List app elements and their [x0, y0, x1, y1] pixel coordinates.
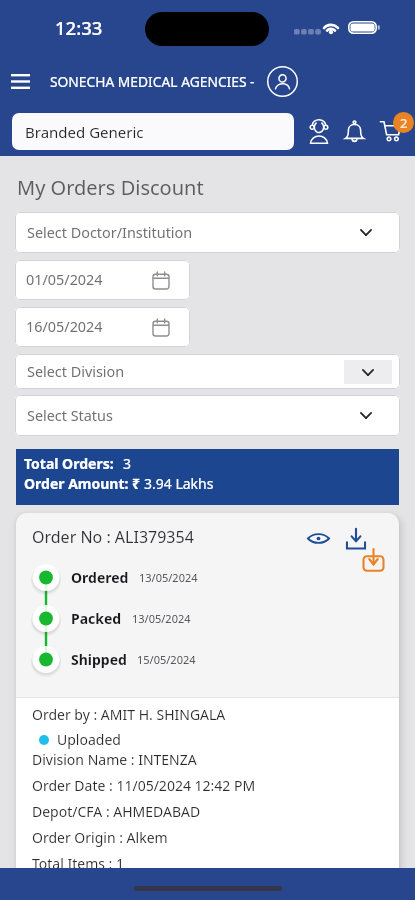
staticText: Branded Generic — [25, 122, 144, 142]
staticText: Packed — [71, 609, 122, 628]
staticText: Ordered — [71, 568, 129, 587]
staticText: Select Division — [27, 362, 125, 382]
button[interactable]: 16/05/2024 — [15, 307, 190, 347]
staticText: Order Date : 11/05/2024 12:42 PM — [32, 776, 256, 795]
staticText: Shipped — [71, 650, 127, 669]
staticText: Order Origin : Alkem — [32, 828, 168, 847]
staticText: 15/05/2024 — [137, 652, 196, 667]
button[interactable]: Download invoice — [359, 546, 387, 574]
button[interactable]: Cart — [375, 116, 405, 146]
staticText: Total Items : 1 — [32, 854, 124, 873]
button[interactable]: Select Status — [15, 395, 400, 436]
staticText: 16/05/2024 — [26, 317, 103, 337]
button[interactable]: View order — [303, 523, 333, 553]
staticText: Total Orders: — [24, 454, 114, 473]
staticText: 2 — [400, 114, 408, 132]
staticText: 13/05/2024 — [139, 570, 198, 585]
staticText: Order by : AMIT H. SHINGALA — [32, 705, 226, 724]
staticText: Select Doctor/Institution — [27, 223, 193, 243]
staticText: Select Status — [27, 406, 113, 426]
button[interactable]: 01/05/2024 — [15, 260, 190, 300]
button[interactable]: Menu — [2, 63, 38, 99]
button[interactable]: Customer support — [304, 116, 334, 146]
button[interactable]: Notifications — [339, 116, 369, 146]
staticText: Division Name : INTENZA — [32, 750, 197, 769]
staticText: Order No : ALI379354 — [32, 526, 194, 548]
staticText: My Orders Discount — [17, 174, 204, 201]
button[interactable]: Download order — [341, 524, 371, 554]
button[interactable]: Branded Generic — [12, 113, 294, 150]
button[interactable]: Select Division — [15, 354, 400, 389]
staticText: Order Amount: ₹ — [24, 474, 141, 493]
staticText: 13/05/2024 — [132, 611, 191, 626]
staticText: SONECHA MEDICAL AGENCIES - — [50, 72, 255, 91]
staticText: Uploaded — [57, 730, 121, 749]
staticText: 01/05/2024 — [26, 270, 103, 290]
button[interactable]: Account — [265, 64, 299, 98]
staticText: Depot/CFA : AHMEDABAD — [32, 802, 201, 821]
staticText: 3 — [123, 454, 132, 473]
staticText: 3.94 Lakhs — [144, 474, 214, 493]
button[interactable]: Select Doctor/Institution — [15, 212, 400, 253]
staticText: 12:33 — [55, 15, 103, 40]
